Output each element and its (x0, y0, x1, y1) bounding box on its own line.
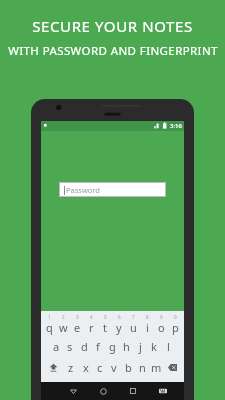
staticText: y (116, 320, 122, 335)
staticText: 0 (174, 314, 177, 320)
staticText: t (103, 320, 107, 335)
staticText: 9 (160, 314, 163, 320)
button[interactable]: d (77, 337, 91, 356)
staticText: l (167, 339, 170, 354)
staticText: 8 (146, 314, 149, 320)
staticText: w (59, 320, 68, 335)
staticText: f (96, 339, 100, 354)
button[interactable]: Backspace (163, 358, 182, 377)
staticText: c (97, 360, 103, 375)
button[interactable]: j (133, 337, 147, 356)
button[interactable]: 7 (126, 314, 140, 335)
button[interactable]: a (50, 337, 63, 356)
staticText: 3 (76, 314, 79, 320)
staticText: WITH PASSWORD AND FINGERPRINT (8, 43, 218, 59)
staticText: 2 (62, 314, 65, 320)
button[interactable]: Password (59, 182, 166, 197)
staticText: h (123, 339, 130, 354)
staticText: i (146, 320, 149, 335)
button[interactable]: v (107, 358, 121, 377)
staticText: n (139, 360, 146, 375)
staticText: o (158, 320, 165, 335)
button[interactable]: ?123 (43, 379, 62, 397)
button[interactable]: Enter (158, 379, 182, 397)
staticText: 3:16 (170, 122, 182, 130)
button[interactable]: g (105, 337, 119, 356)
button[interactable]: Home (88, 382, 118, 400)
staticText: 4 (90, 314, 93, 320)
button[interactable]: , (62, 379, 73, 397)
button[interactable]: 3 (70, 314, 84, 335)
button[interactable]: h (119, 337, 133, 356)
button[interactable]: k (147, 337, 161, 356)
staticText: k (151, 339, 157, 354)
button[interactable]: 1 (43, 314, 56, 335)
button[interactable]: Switch keyboard (148, 382, 178, 400)
button[interactable]: f (91, 337, 105, 356)
button[interactable]: 0 (168, 314, 182, 335)
staticText: g (109, 339, 116, 354)
button[interactable]: 4 (84, 314, 98, 335)
staticText: m (151, 360, 162, 375)
button[interactable]: 6 (112, 314, 126, 335)
staticText: SECURE YOUR NOTES (32, 16, 193, 36)
button[interactable]: Back (58, 382, 88, 400)
staticText: v (111, 360, 117, 375)
button[interactable]: s (63, 337, 77, 356)
staticText: 1 (48, 314, 51, 320)
staticText: j (139, 339, 142, 354)
staticText: d (81, 339, 88, 354)
staticText: 7 (132, 314, 135, 320)
button[interactable]: 2 (56, 314, 70, 335)
staticText: u (130, 320, 137, 335)
staticText: s (67, 339, 73, 354)
button[interactable]: x (78, 358, 93, 377)
staticText: x (83, 360, 89, 375)
button[interactable]: m (149, 358, 163, 377)
staticText: q (46, 320, 53, 335)
staticText: a (53, 339, 60, 354)
button[interactable]: z (63, 358, 78, 377)
staticText: p (172, 320, 179, 335)
button[interactable]: . (147, 379, 158, 397)
button[interactable]: b (121, 358, 135, 377)
button[interactable]: Shift (43, 358, 63, 377)
button[interactable]: 5 (98, 314, 112, 335)
button[interactable]: Recents (118, 382, 148, 400)
button[interactable]: 9 (154, 314, 168, 335)
staticText: e (74, 320, 81, 335)
staticText: z (68, 360, 74, 375)
button[interactable]: c (93, 358, 107, 377)
staticText: 5 (104, 314, 107, 320)
button[interactable]: n (135, 358, 149, 377)
button[interactable]: Space (73, 379, 147, 397)
staticText: b (125, 360, 132, 375)
staticText: 6 (118, 314, 121, 320)
staticText: r (89, 320, 94, 335)
button[interactable]: l (161, 337, 175, 356)
button[interactable]: 8 (140, 314, 154, 335)
staticText: Password (66, 185, 100, 195)
